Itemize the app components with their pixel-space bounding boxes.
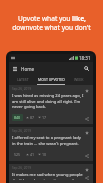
button[interactable]: Share [84,153,90,159]
button[interactable]: WEEK [65,75,93,84]
button[interactable]: LATEST [9,75,37,84]
staticText: Sep 26, 2019 [12,166,31,170]
staticText: 525 [14,152,21,157]
staticText: downvote what you don't [12,23,91,32]
staticText: 18:31 [79,55,91,61]
button[interactable]: Share [84,116,90,122]
button[interactable]: Favorite [84,88,90,94]
staticText: 10 [42,152,47,157]
staticText: Sep 26, 2019 [12,87,31,91]
staticText: 87 [30,115,35,120]
button[interactable]: 525 [12,151,23,158]
staticText: 17 [42,115,47,120]
button[interactable]: MOST UPVOTED [37,75,65,84]
button[interactable]: Favorite [84,167,90,173]
staticText: 41 [30,152,35,157]
staticText: MOST UPVOTED [38,77,65,82]
button[interactable]: 840 [12,114,23,121]
staticText: Upvote what you like, [18,14,86,23]
staticText: LATEST [17,77,29,82]
staticText: It makes me sad when young people don't … [12,172,85,180]
staticText: 840 [14,115,21,120]
button[interactable]: Open navigation menu [11,65,19,73]
staticText: Home [21,66,35,72]
button[interactable]: Share [84,175,90,181]
button[interactable]: Search [82,64,91,73]
staticText: I offered my seat to a pregnant lady in … [12,135,85,146]
staticText: I was hired as missing 24 years ago, I a… [12,93,85,109]
staticText: WEEK [74,77,84,82]
button[interactable]: Favorite [84,130,90,136]
staticText: Sep 26, 2019 [12,129,31,133]
